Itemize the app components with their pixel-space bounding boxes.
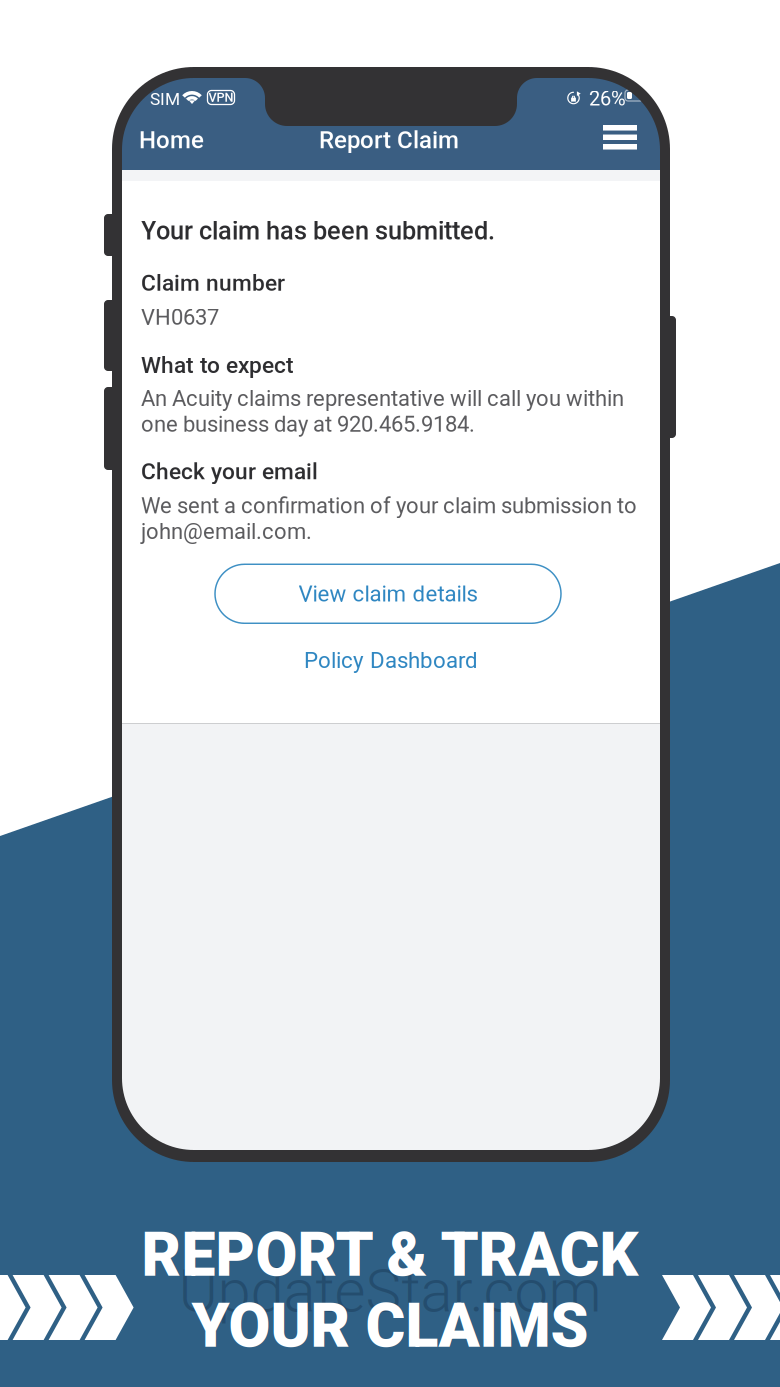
staticText: View claim details: [298, 581, 477, 607]
staticText: An Acuity claims representative will cal…: [141, 386, 624, 437]
staticText: Check your email: [141, 458, 318, 485]
staticText: 26%: [589, 87, 626, 110]
staticText: VPN: [208, 90, 233, 105]
staticText: Claim number: [141, 270, 285, 296]
staticText: Your claim has been submitted.: [141, 216, 495, 246]
staticText: Policy Dashboard: [304, 647, 478, 673]
staticText: What to expect: [141, 352, 294, 379]
staticText: Report Claim: [319, 126, 459, 154]
staticText: UpdateStar.com: [178, 1256, 601, 1326]
staticText: YOUR CLAIMS: [191, 1290, 588, 1362]
button[interactable]: View claim details: [215, 564, 561, 623]
button[interactable]: Menu: [595, 117, 645, 158]
staticText: SIM: [150, 89, 180, 109]
button[interactable]: Policy Dashboard: [141, 637, 641, 683]
staticText: We sent a confirmation of your claim sub…: [141, 493, 637, 544]
staticText: VH0637: [141, 304, 219, 330]
button[interactable]: Home: [139, 118, 223, 161]
staticText: REPORT & TRACK: [141, 1219, 638, 1291]
staticText: Home: [139, 126, 204, 154]
